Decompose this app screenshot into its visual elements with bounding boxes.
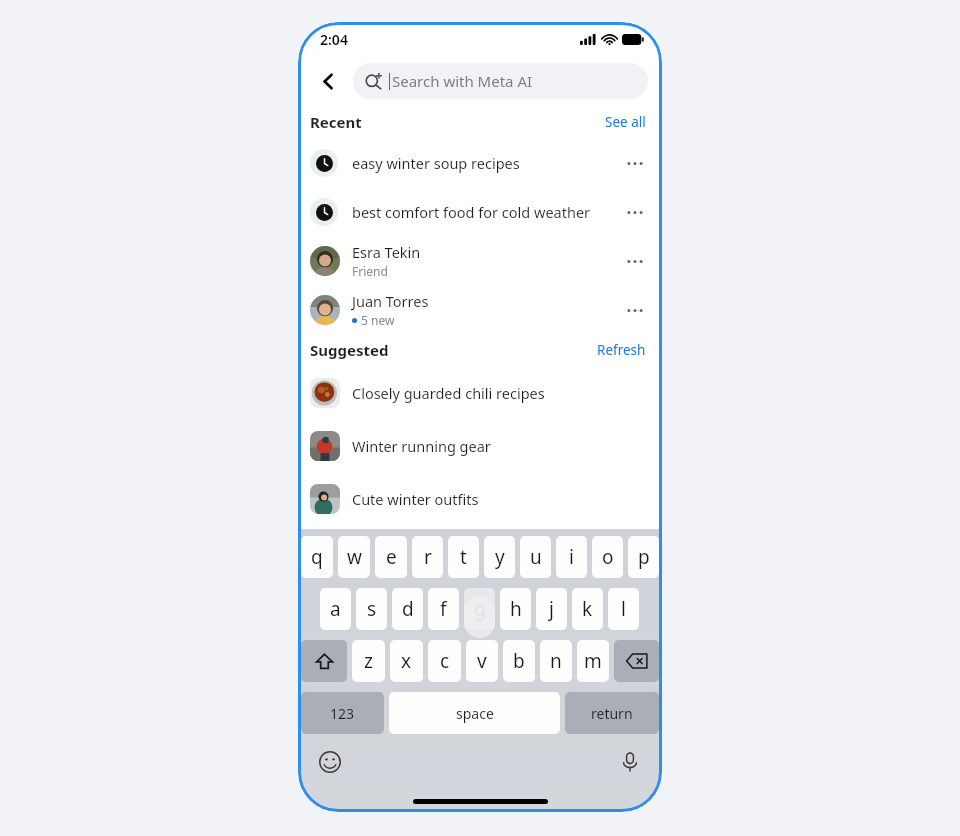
- button[interactable]: q: [301, 536, 333, 578]
- button[interactable]: Backspace: [614, 640, 659, 682]
- button[interactable]: a: [320, 588, 351, 630]
- button[interactable]: b: [503, 640, 535, 682]
- button[interactable]: k: [572, 588, 603, 630]
- staticText: 123: [330, 704, 355, 723]
- staticText: Recent: [310, 112, 362, 132]
- staticText: return: [591, 704, 633, 723]
- staticText: w: [347, 544, 362, 570]
- staticText: z: [364, 648, 373, 674]
- staticText: Refresh: [597, 341, 646, 359]
- button[interactable]: x: [390, 640, 423, 682]
- staticText: b: [513, 648, 525, 674]
- button[interactable]: o: [592, 536, 623, 578]
- staticText: 2:04: [320, 30, 348, 49]
- staticText: f: [440, 596, 447, 622]
- staticText: best comfort food for cold weather: [352, 202, 622, 222]
- button[interactable]: More options: [622, 150, 648, 176]
- staticText: x: [401, 648, 412, 674]
- button[interactable]: s: [356, 588, 387, 630]
- button[interactable]: w: [338, 536, 370, 578]
- button[interactable]: best comfort food for cold weather: [298, 187, 662, 236]
- staticText: Juan Torres: [352, 291, 429, 311]
- button[interactable]: Juan Torres: [298, 285, 662, 334]
- staticText: k: [582, 596, 593, 622]
- button[interactable]: return: [565, 692, 659, 734]
- button[interactable]: g: [464, 588, 495, 630]
- staticText: r: [424, 544, 432, 570]
- button[interactable]: 123: [301, 692, 384, 734]
- button[interactable]: f: [428, 588, 459, 630]
- button[interactable]: u: [520, 536, 551, 578]
- staticText: e: [386, 544, 397, 570]
- staticText: g: [474, 596, 486, 622]
- staticText: a: [330, 596, 341, 622]
- staticText: Suggested: [310, 340, 389, 360]
- staticText: q: [311, 544, 323, 570]
- button[interactable]: More options: [622, 199, 648, 225]
- staticText: Esra Tekin: [352, 242, 421, 262]
- button[interactable]: y: [484, 536, 515, 578]
- staticText: l: [621, 596, 626, 622]
- button[interactable]: See all: [603, 111, 648, 133]
- button[interactable]: Search with Meta AI: [353, 63, 648, 99]
- staticText: o: [602, 544, 614, 570]
- button[interactable]: More options: [622, 248, 648, 274]
- button[interactable]: p: [628, 536, 659, 578]
- staticText: v: [477, 648, 487, 674]
- staticText: u: [530, 544, 542, 570]
- staticText: See all: [605, 113, 646, 131]
- button[interactable]: v: [466, 640, 498, 682]
- staticText: easy winter soup recipes: [352, 153, 622, 173]
- button[interactable]: j: [536, 588, 567, 630]
- button[interactable]: h: [500, 588, 531, 630]
- button[interactable]: z: [352, 640, 385, 682]
- button[interactable]: More options: [622, 297, 648, 323]
- button[interactable]: e: [375, 536, 407, 578]
- staticText: d: [402, 596, 414, 622]
- button[interactable]: l: [608, 588, 639, 630]
- button[interactable]: Refresh: [595, 339, 648, 361]
- button[interactable]: r: [412, 536, 443, 578]
- staticText: 5 new: [361, 312, 395, 328]
- staticText: c: [440, 648, 450, 674]
- button[interactable]: easy winter soup recipes: [298, 138, 662, 187]
- button[interactable]: Winter running gear: [298, 419, 662, 472]
- button[interactable]: Emoji: [315, 747, 345, 777]
- button[interactable]: Back: [312, 65, 344, 97]
- staticText: Search with Meta AI: [392, 71, 533, 91]
- button[interactable]: m: [577, 640, 609, 682]
- button[interactable]: c: [428, 640, 461, 682]
- staticText: m: [584, 648, 602, 674]
- staticText: Cute winter outfits: [352, 489, 648, 509]
- staticText: Winter running gear: [352, 436, 648, 456]
- button[interactable]: Shift: [301, 640, 347, 682]
- staticText: Closely guarded chili recipes: [352, 383, 648, 403]
- button[interactable]: n: [540, 640, 572, 682]
- button[interactable]: Esra Tekin: [298, 236, 662, 285]
- staticText: h: [510, 596, 522, 622]
- staticText: s: [367, 596, 377, 622]
- staticText: y: [495, 544, 505, 570]
- button[interactable]: t: [448, 536, 479, 578]
- staticText: p: [638, 544, 650, 570]
- button[interactable]: i: [556, 536, 587, 578]
- button[interactable]: Cute winter outfits: [298, 472, 662, 525]
- staticText: j: [549, 596, 554, 622]
- button[interactable]: Voice input: [615, 747, 645, 777]
- button[interactable]: space: [389, 692, 560, 734]
- staticText: Friend: [352, 263, 388, 279]
- staticText: i: [569, 544, 574, 570]
- button[interactable]: d: [392, 588, 423, 630]
- staticText: n: [550, 648, 562, 674]
- staticText: space: [456, 704, 494, 723]
- staticText: t: [460, 544, 467, 570]
- button[interactable]: Closely guarded chili recipes: [298, 366, 662, 419]
